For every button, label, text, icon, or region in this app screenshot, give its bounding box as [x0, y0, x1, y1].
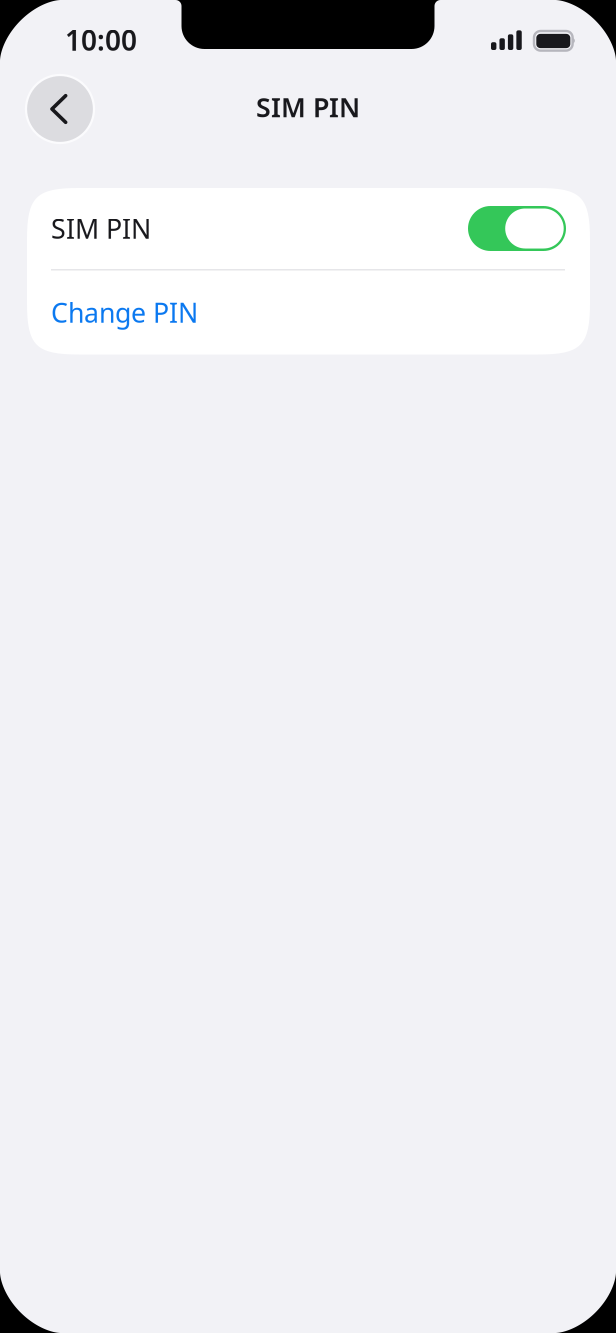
staticText: SIM PIN [51, 211, 151, 246]
button[interactable]: Change PIN [27, 270, 590, 354]
staticText: 10:00 [65, 21, 137, 59]
button[interactable]: Back [26, 75, 94, 143]
staticText: SIM PIN [256, 89, 360, 125]
staticText: Change PIN [51, 295, 198, 330]
